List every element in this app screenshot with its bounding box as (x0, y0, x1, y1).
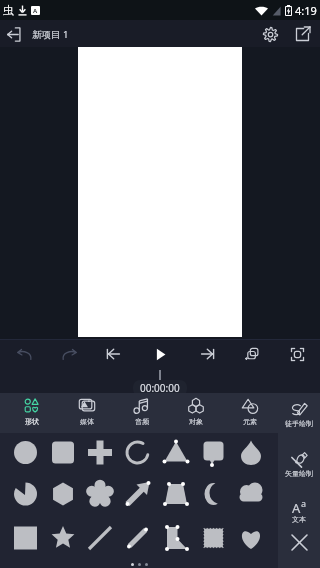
button[interactable]: 音频 (114, 393, 168, 433)
button[interactable]: Redo (58, 343, 80, 365)
staticText: 虫 (3, 3, 14, 17)
button[interactable]: Skip to end (197, 343, 219, 365)
staticText: 新项目 1 (32, 28, 69, 41)
button[interactable]: Skip to start (102, 343, 124, 365)
staticText: 媒体 (80, 417, 94, 426)
button[interactable]: Duplicate (241, 343, 263, 365)
button[interactable]: 徒手绘制 (278, 401, 320, 428)
button[interactable]: Export (290, 22, 314, 46)
staticText: 形状 (25, 417, 39, 426)
button[interactable]: Back (2, 22, 26, 46)
button[interactable]: Undo (13, 343, 35, 365)
staticText: 文本 (292, 515, 306, 524)
staticText: 矢量绘制 (285, 469, 313, 478)
button[interactable]: 对象 (168, 393, 222, 433)
button[interactable]: 形状 (4, 393, 58, 433)
staticText: 元素 (243, 417, 257, 426)
button[interactable]: 媒体 (59, 393, 113, 433)
staticText: 音频 (135, 417, 149, 426)
button[interactable]: Play (149, 343, 171, 365)
button[interactable]: Close (278, 528, 320, 556)
button[interactable]: Fit to screen (286, 343, 308, 365)
button[interactable]: 元素 (222, 393, 276, 433)
button[interactable]: 矢量绘制 (278, 451, 320, 478)
staticText: 徒手绘制 (285, 419, 313, 428)
staticText: a (301, 497, 307, 509)
button[interactable]: Settings (258, 22, 282, 46)
staticText: A (292, 499, 301, 516)
staticText: 4:19 (295, 3, 317, 18)
button[interactable]: A (278, 497, 320, 524)
staticText: 对象 (189, 417, 203, 426)
staticText: 00:00:00 (140, 381, 180, 395)
staticText: A (33, 7, 38, 15)
